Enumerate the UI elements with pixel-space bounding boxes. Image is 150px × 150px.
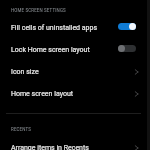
button[interactable]: Home screen layout <box>0 83 150 105</box>
other: Home screen layout <box>134 90 139 98</box>
staticText: Arrange items in Recents <box>11 144 131 150</box>
button[interactable]: Fill cells of uninstalled apps <box>0 17 150 39</box>
staticText: RECENTS <box>11 127 32 132</box>
staticText: Home screen layout <box>11 90 131 98</box>
button[interactable]: Arrange items in Recents <box>0 137 150 150</box>
other: Arrange items in Recents <box>134 144 139 150</box>
staticText: HOME SCREEN SETTINGS <box>11 8 66 13</box>
other: Icon size <box>134 68 139 76</box>
staticText: Fill cells of uninstalled apps <box>11 24 115 32</box>
button[interactable]: Icon size <box>0 61 150 83</box>
staticText: Lock Home screen layout <box>11 46 115 54</box>
staticText: Icon size <box>11 68 131 76</box>
button[interactable]: Lock Home screen layout <box>0 39 150 61</box>
